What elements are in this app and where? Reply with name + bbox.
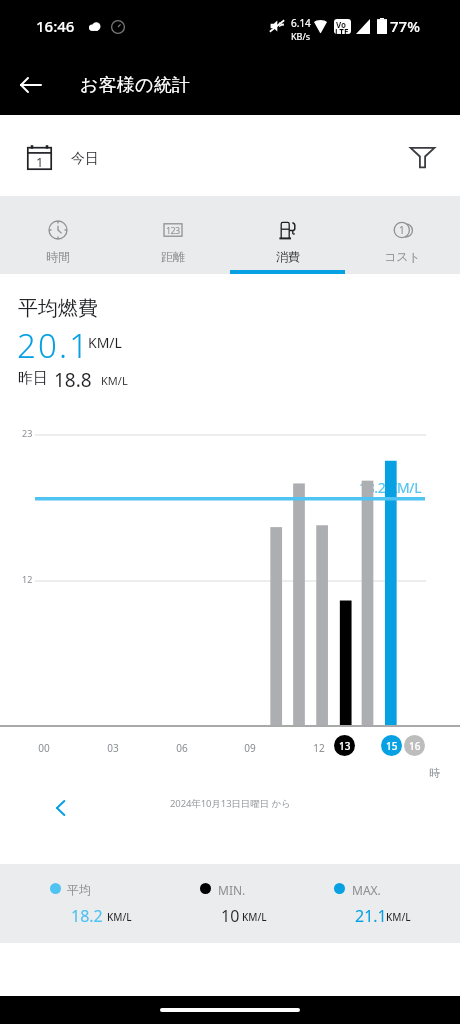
- staticText: 00: [38, 741, 50, 755]
- staticText: 23: [22, 427, 33, 439]
- staticText: 今日: [71, 150, 99, 168]
- staticText: MIN.: [218, 882, 246, 898]
- button[interactable]: [330, 876, 455, 930]
- button[interactable]: 123: [115, 196, 230, 274]
- button[interactable]: 1: [345, 196, 460, 274]
- staticText: 03: [107, 741, 119, 755]
- staticText: 距離: [161, 249, 185, 264]
- staticText: 2024年10月13日日曜日 から: [170, 797, 291, 810]
- staticText: KM/L: [242, 910, 267, 924]
- staticText: 16:46: [36, 16, 75, 36]
- staticText: 1: [36, 153, 44, 171]
- staticText: 10: [221, 905, 240, 927]
- staticText: コスト: [384, 249, 421, 264]
- staticText: 18.2: [71, 905, 103, 927]
- staticText: 1: [399, 223, 405, 237]
- staticText: 12: [22, 573, 33, 585]
- staticText: 時: [429, 766, 440, 780]
- staticText: 77%: [390, 16, 420, 36]
- staticText: 06: [176, 741, 188, 755]
- staticText: 15: [386, 739, 398, 753]
- staticText: KM/L: [107, 910, 132, 924]
- staticText: KM/L: [386, 910, 411, 924]
- button[interactable]: [196, 876, 321, 930]
- staticText: 6.14: [291, 16, 311, 30]
- button[interactable]: 時間: [0, 196, 115, 274]
- staticText: 18.8: [54, 367, 92, 393]
- button[interactable]: 16: [404, 735, 425, 756]
- button[interactable]: Back: [9, 63, 53, 107]
- button[interactable]: 15: [381, 735, 402, 756]
- staticText: 平均燃費: [18, 296, 98, 321]
- staticText: MAX.: [352, 882, 381, 898]
- staticText: 昨日: [18, 369, 48, 388]
- button[interactable]: 13: [334, 735, 355, 756]
- button[interactable]: 1: [14, 129, 114, 183]
- staticText: 18.2 KM/L: [359, 478, 422, 497]
- button[interactable]: Filter: [396, 130, 448, 182]
- staticText: 12: [313, 741, 325, 755]
- staticText: KM/L: [101, 373, 128, 388]
- staticText: LTE: [335, 26, 349, 34]
- button[interactable]: Previous day: [38, 786, 81, 829]
- staticText: Vo: [336, 19, 347, 30]
- staticText: 16: [409, 739, 421, 753]
- staticText: 123: [166, 224, 180, 236]
- staticText: 13: [339, 739, 351, 753]
- staticText: お客様の統計: [80, 74, 191, 97]
- staticText: 20.1: [17, 323, 91, 368]
- staticText: 平均: [67, 882, 91, 897]
- staticText: 時間: [46, 249, 70, 264]
- staticText: 09: [244, 741, 256, 755]
- button[interactable]: 消費: [230, 196, 345, 274]
- staticText: 21.1: [355, 905, 387, 927]
- staticText: 消費: [276, 249, 300, 264]
- staticText: KM/L: [88, 333, 122, 352]
- button[interactable]: [46, 876, 171, 930]
- staticText: KB/s: [291, 30, 311, 42]
